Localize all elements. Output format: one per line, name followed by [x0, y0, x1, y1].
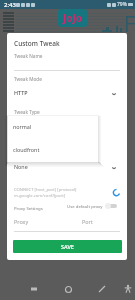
staticText: Proxy Settings	[14, 205, 43, 211]
staticText: Custom Tweak	[14, 39, 60, 48]
button[interactable]: Home	[60, 281, 76, 297]
button[interactable]: Back	[94, 281, 110, 297]
button[interactable]: Accessibility	[120, 281, 135, 297]
staticText: SAVE	[61, 243, 74, 250]
button[interactable]: cloudfront	[8, 139, 98, 162]
button[interactable]: Refresh payload	[109, 185, 123, 199]
staticText: Tweak Name	[14, 53, 43, 59]
button[interactable]: SAVE	[13, 240, 122, 253]
button[interactable]: Recents	[26, 281, 42, 297]
staticText: Tweak Type	[14, 109, 40, 115]
button[interactable]: Use default proxy	[67, 203, 117, 209]
button[interactable]: normal	[8, 116, 98, 139]
staticText: None	[14, 163, 28, 170]
staticText: CONNECT [host_port] [protocol]	[14, 187, 77, 193]
staticText: HTTP	[14, 89, 28, 96]
staticText: Use default proxy	[67, 203, 103, 209]
staticText: JoJo	[63, 11, 83, 25]
staticText: normal	[13, 123, 32, 130]
staticText: cloudfront	[13, 146, 40, 153]
staticText: m.google.com/conf/[port]	[14, 193, 66, 199]
staticText: 79%	[117, 1, 127, 8]
staticText: Port	[82, 218, 93, 225]
staticText: 2:43	[4, 1, 16, 9]
staticText: Proxy	[14, 218, 29, 225]
staticText: Tweak Mode	[14, 76, 42, 82]
